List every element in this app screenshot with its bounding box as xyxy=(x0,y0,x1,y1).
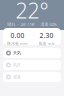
staticText: 晴れ · 24° / 18° · 湿度 62% xyxy=(7,22,56,27)
staticText: 降水量 mm xyxy=(7,41,28,46)
staticText: 湿度 xyxy=(13,74,21,79)
staticText: 天気 xyxy=(13,50,21,55)
staticText: 2.30 xyxy=(39,31,53,40)
staticText: 気圧 xyxy=(13,62,21,67)
button[interactable]: 気圧 xyxy=(0,60,64,70)
staticText: 風速 m/s xyxy=(38,41,54,46)
button[interactable]: 天気 xyxy=(0,48,64,58)
button[interactable]: 湿度 xyxy=(0,72,64,82)
staticText: 22° xyxy=(15,0,48,24)
staticText: 0.00 xyxy=(10,31,24,40)
